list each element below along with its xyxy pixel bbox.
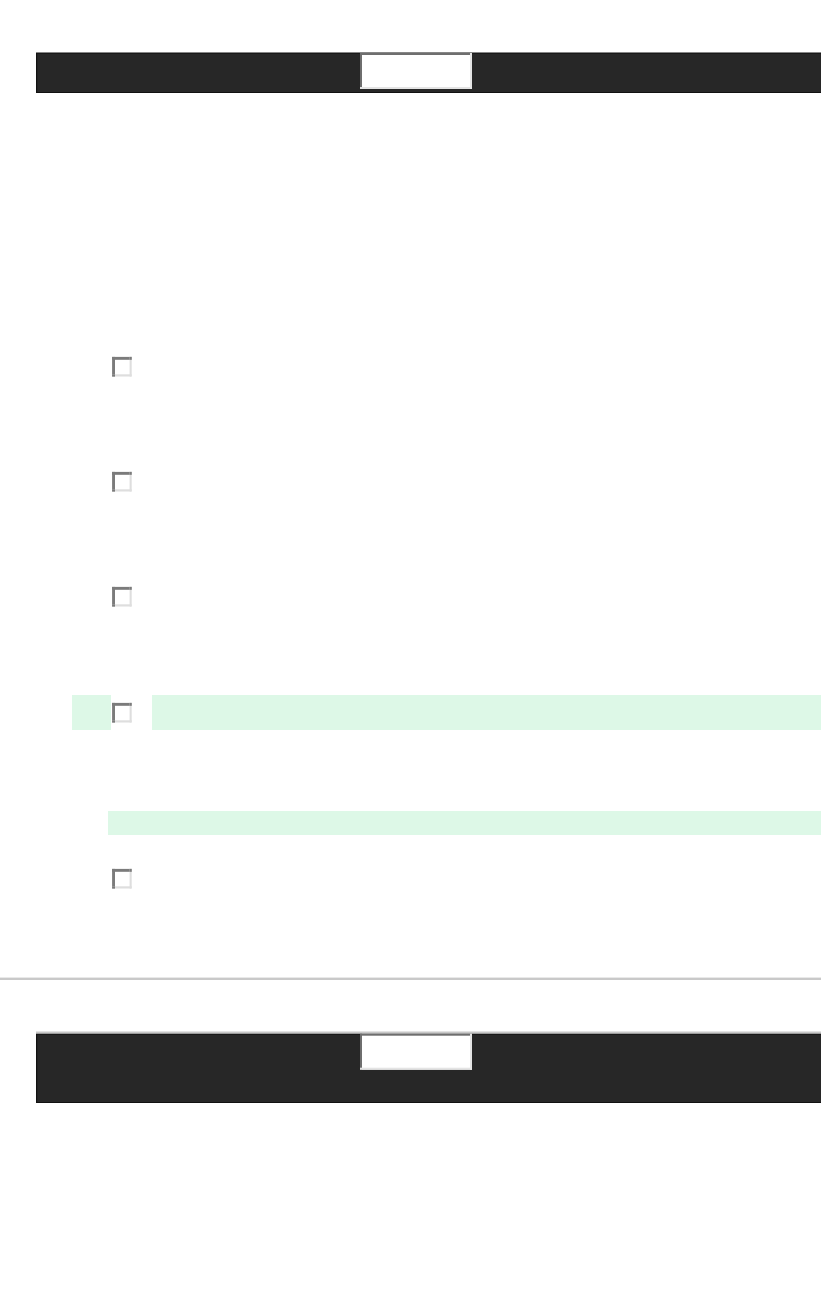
button[interactable]: Checkbox 5 [112, 869, 132, 889]
button[interactable]: Text field [360, 1034, 472, 1070]
button[interactable]: Checkbox 3 [112, 587, 132, 607]
button[interactable]: Checkbox 4 [112, 703, 132, 723]
button[interactable]: Checkbox 2 [112, 472, 132, 492]
button[interactable]: Checkbox 1 [112, 357, 132, 377]
button[interactable]: Top toolbar [36, 53, 821, 93]
button[interactable]: Text field [360, 53, 472, 89]
button[interactable]: Bottom toolbar [36, 1034, 821, 1103]
